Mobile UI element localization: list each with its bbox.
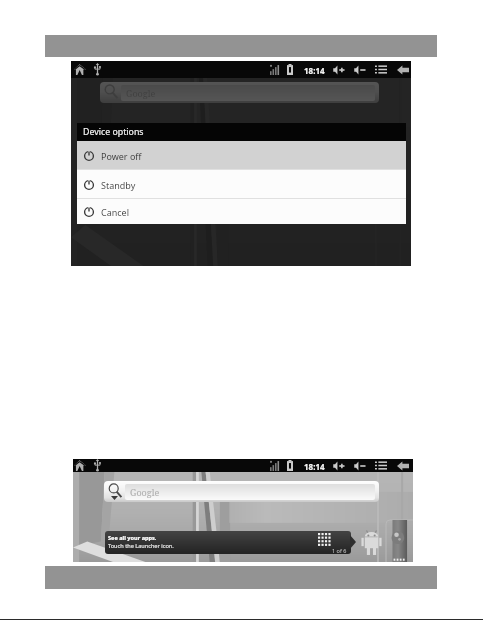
button[interactable] — [105, 531, 351, 554]
button[interactable]: Menu — [375, 461, 387, 470]
button[interactable]: Menu — [375, 65, 387, 74]
button[interactable]: Volume down — [354, 461, 366, 471]
staticText: Power off — [101, 150, 142, 162]
staticText: 18:14 — [304, 461, 325, 472]
button[interactable]: Back — [397, 65, 409, 75]
staticText: Cancel — [101, 206, 130, 218]
other: USB connected — [93, 63, 102, 76]
staticText: 18:14 — [304, 65, 325, 76]
staticText: Device options — [83, 126, 144, 138]
button[interactable]: Volume up — [333, 461, 345, 471]
button[interactable]: Volume up — [333, 65, 345, 75]
button[interactable]: Cancel — [77, 199, 406, 224]
button[interactable]: Power off — [77, 141, 406, 170]
staticText: 1 of 6 — [332, 547, 347, 554]
button[interactable]: Back — [397, 461, 409, 471]
button[interactable]: Home — [74, 460, 86, 471]
staticText: Google — [130, 486, 160, 498]
staticText: See all your apps. — [108, 534, 157, 542]
button[interactable] — [104, 481, 379, 502]
staticText: Google — [126, 87, 156, 99]
button[interactable]: Standby — [77, 170, 406, 199]
button[interactable]: Home — [74, 64, 86, 75]
other: USB connected — [93, 459, 102, 472]
button[interactable] — [100, 82, 379, 103]
staticText: Touch the Launcher icon. — [108, 542, 174, 550]
button[interactable]: Volume down — [354, 65, 366, 75]
staticText: Standby — [101, 179, 136, 191]
